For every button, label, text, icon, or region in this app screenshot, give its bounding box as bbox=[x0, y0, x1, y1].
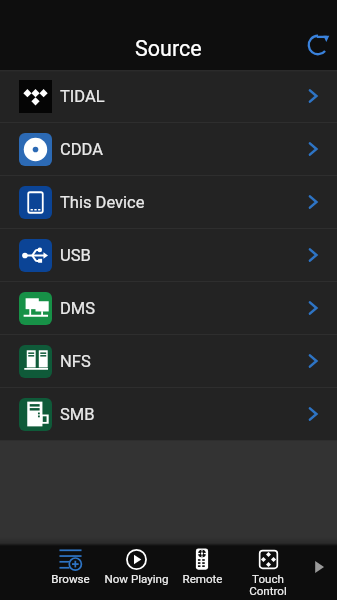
button[interactable]: More tabs bbox=[301, 543, 337, 590]
button[interactable]: USB bbox=[0, 229, 337, 281]
staticText: SMB bbox=[60, 405, 95, 424]
staticText: Source bbox=[135, 36, 202, 61]
button[interactable]: Now Playing bbox=[103, 543, 169, 600]
button[interactable]: NFS bbox=[0, 335, 337, 387]
staticText: This Device bbox=[60, 193, 145, 212]
button[interactable]: Remote bbox=[169, 543, 235, 600]
button[interactable]: Refresh bbox=[300, 27, 336, 63]
button[interactable]: Touch Control bbox=[235, 543, 301, 600]
staticText: DMS bbox=[60, 299, 96, 318]
button[interactable]: SMB bbox=[0, 388, 337, 440]
staticText: CDDA bbox=[60, 140, 103, 159]
button[interactable]: DMS bbox=[0, 282, 337, 334]
button[interactable]: This Device bbox=[0, 176, 337, 228]
staticText: Remote bbox=[182, 572, 223, 586]
button[interactable]: Browse bbox=[37, 543, 103, 600]
staticText: Touch Control bbox=[249, 572, 287, 598]
button[interactable]: CDDA bbox=[0, 123, 337, 175]
staticText: TIDAL bbox=[60, 87, 105, 106]
button[interactable]: TIDAL bbox=[0, 70, 337, 122]
staticText: Now Playing bbox=[104, 572, 169, 586]
staticText: USB bbox=[60, 246, 91, 265]
staticText: Browse bbox=[51, 572, 90, 586]
staticText: NFS bbox=[60, 352, 91, 371]
